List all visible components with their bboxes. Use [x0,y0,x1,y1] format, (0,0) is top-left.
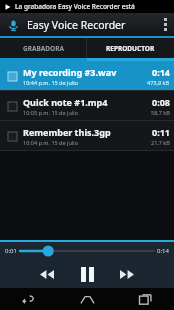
staticText: Easy Voice Recorder [27,18,156,32]
button[interactable]: Select My recording #3.wav [0,61,174,90]
staticText: La grabadora Easy Voice Recorder está [15,2,135,11]
staticText: 0:14 [152,66,170,78]
staticText: 10:04 p.m. 15 de julio [23,139,79,146]
button[interactable]: Back [0,288,58,310]
staticText: 21,7 kB [151,139,170,146]
button[interactable]: App icon [5,17,21,33]
button[interactable]: Select Remember this.3gp [0,121,174,150]
button[interactable]: More options [156,13,174,36]
staticText: 0:14 [157,247,169,255]
button[interactable]: Select Quick note #1.mp4 [0,91,174,120]
button[interactable]: Seek bar [20,242,154,260]
staticText: 58,7 kB [151,109,170,116]
staticText: Quick note #1.mp4 [23,96,108,108]
button[interactable]: GRABADORA [0,38,86,58]
button[interactable]: Home [58,288,116,310]
button[interactable]: Recent apps [116,288,174,310]
button[interactable]: Fast forward [114,261,140,287]
button[interactable]: REPRODUCTOR [87,38,174,58]
staticText: 10:05 p.m. 15 de julio [23,109,79,116]
staticText: GRABADORA [23,44,64,53]
button[interactable]: Pause [74,261,100,287]
staticText: My recording #3.wav [23,66,117,78]
staticText: 473,9 kB [147,79,170,86]
staticText: 0:11 [152,126,170,138]
button[interactable]: Select Quick note #1.mp4 [4,98,20,114]
button[interactable]: Rewind [34,261,60,287]
staticText: 0:08 [152,96,170,108]
staticText: 0:01 [5,247,17,255]
button[interactable]: Select Remember this.3gp [4,128,20,144]
staticText: Remember this.3gp [23,126,111,138]
staticText: REPRODUCTOR [106,44,155,53]
button[interactable]: Select My recording #3.wav [4,68,20,84]
staticText: 10:44 p.m. 15 de julio [23,79,79,86]
